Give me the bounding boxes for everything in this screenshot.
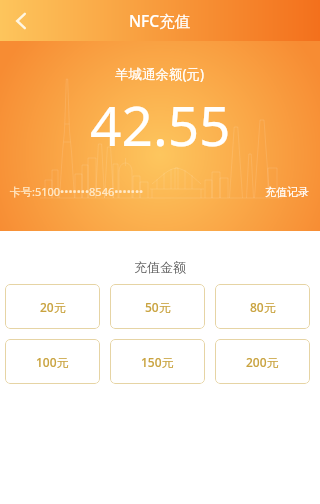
staticText: 20元 xyxy=(40,299,66,315)
staticText: 80元 xyxy=(250,299,276,315)
button[interactable]: 20元 xyxy=(5,284,100,329)
staticText: 充值记录 xyxy=(265,185,309,199)
staticText: 充值金额 xyxy=(0,259,320,275)
button[interactable]: 150元 xyxy=(110,339,205,384)
staticText: 羊城通余额(元) xyxy=(115,65,205,83)
staticText: NFC充值 xyxy=(129,10,191,31)
staticText: 卡号:5100•••••••8546••••••• xyxy=(10,184,144,199)
button[interactable]: Back xyxy=(0,0,41,41)
button[interactable]: 80元 xyxy=(215,284,310,329)
button[interactable]: 充值记录 xyxy=(265,185,309,199)
staticText: 100元 xyxy=(36,354,69,370)
staticText: 42.55 xyxy=(90,87,231,162)
button[interactable]: 200元 xyxy=(215,339,310,384)
button[interactable]: 100元 xyxy=(5,339,100,384)
staticText: 50元 xyxy=(145,299,171,315)
staticText: 200元 xyxy=(246,354,279,370)
button[interactable]: 50元 xyxy=(110,284,205,329)
staticText: 150元 xyxy=(141,354,174,370)
